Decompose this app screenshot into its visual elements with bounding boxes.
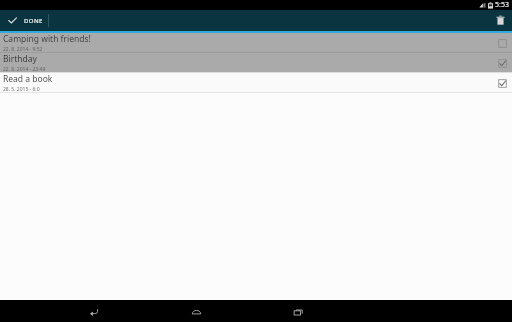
staticText: Birthday <box>3 53 37 65</box>
staticText: 22. 8. 2014 - 9:52 <box>3 46 43 52</box>
staticText: DONE <box>24 17 43 25</box>
button[interactable]: Recents <box>281 300 315 322</box>
button[interactable]: Birthday <box>0 53 512 72</box>
button[interactable]: Delete <box>489 10 512 31</box>
staticText: Read a book <box>3 73 53 85</box>
button[interactable]: DONE <box>0 10 52 31</box>
button[interactable]: Back <box>77 300 111 322</box>
button[interactable]: Read a book <box>0 73 512 92</box>
staticText: 28. 5. 2015 - 6:0 <box>3 86 40 92</box>
staticText: 22. 8. 2014 - 23:49 <box>3 66 46 72</box>
button[interactable]: Checked <box>496 57 508 69</box>
button[interactable]: Unchecked <box>496 37 508 49</box>
staticText: 5:53 <box>495 0 509 10</box>
button[interactable]: Camping with friends! <box>0 33 512 52</box>
staticText: Camping with friends! <box>3 33 91 45</box>
button[interactable]: Home <box>179 300 213 322</box>
button[interactable]: Checked <box>496 77 508 89</box>
